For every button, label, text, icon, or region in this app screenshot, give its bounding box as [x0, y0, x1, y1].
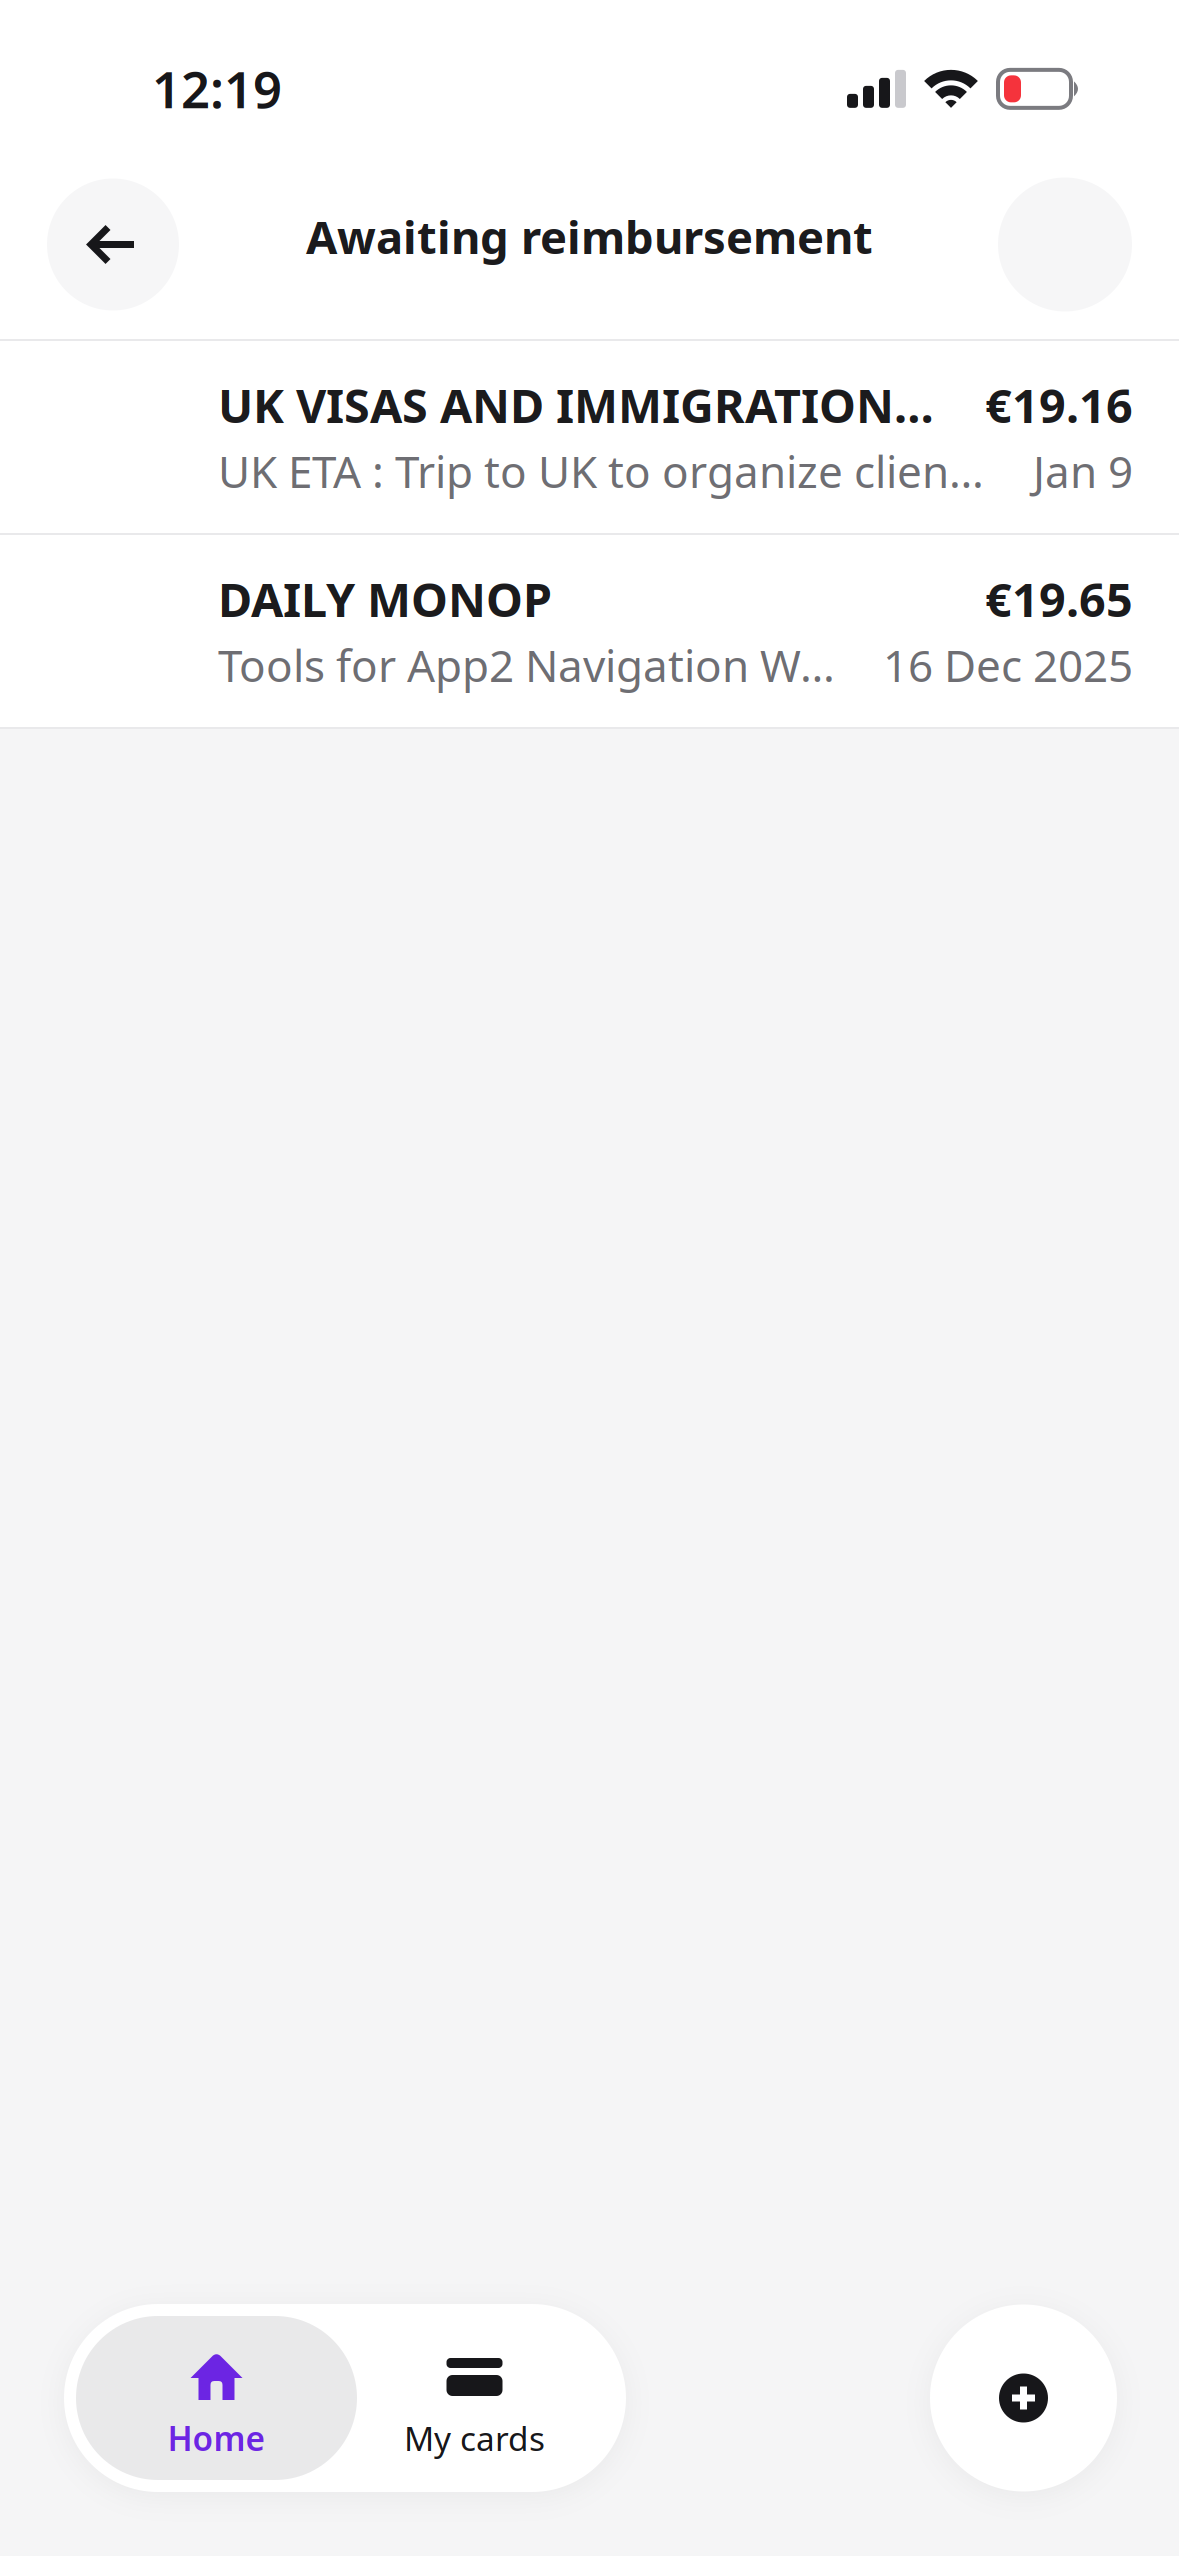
staticText: 12:19 — [152, 55, 282, 122]
button[interactable]: My cards — [357, 2316, 614, 2480]
staticText: My cards — [404, 2416, 545, 2460]
button[interactable]: DAILY MONOP — [0, 535, 1179, 727]
button[interactable]: More options — [998, 177, 1132, 311]
staticText: DAILY MONOP — [218, 568, 552, 630]
button[interactable]: UK VISAS AND IMMIGRATION… — [0, 341, 1179, 533]
button[interactable]: Home — [76, 2316, 357, 2480]
staticText: Jan 9 — [1033, 442, 1133, 500]
staticText: Awaiting reimbursement — [306, 206, 873, 267]
staticText: €19.16 — [985, 374, 1133, 436]
button[interactable]: Back — [47, 178, 179, 310]
staticText: UK VISAS AND IMMIGRATION… — [218, 374, 934, 436]
staticText: Tools for App2 Navigation Wor… — [218, 636, 847, 694]
staticText: UK ETA : Trip to UK to organize client… — [218, 442, 997, 500]
staticText: €19.65 — [985, 568, 1133, 630]
button[interactable]: Add expense — [930, 2304, 1117, 2491]
staticText: Home — [167, 2416, 265, 2460]
staticText: 16 Dec 2025 — [883, 636, 1133, 694]
